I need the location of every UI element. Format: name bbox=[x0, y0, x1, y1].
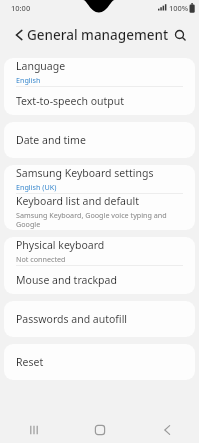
button[interactable]: Back bbox=[133, 417, 199, 443]
button[interactable]: Mouse and trackpad bbox=[4, 266, 195, 294]
button[interactable]: Physical keyboard bbox=[4, 237, 195, 265]
button[interactable]: Language bbox=[4, 58, 195, 86]
staticText: Samsung Keyboard settings bbox=[16, 166, 154, 180]
staticText: 100% bbox=[169, 3, 189, 13]
staticText: 10:00 bbox=[11, 3, 31, 13]
staticText: Not connected bbox=[16, 254, 66, 264]
button[interactable]: Search bbox=[169, 24, 191, 46]
staticText: Samsung Keyboard, Google voice typing an… bbox=[16, 210, 183, 229]
button[interactable]: Text-to-speech output bbox=[4, 87, 195, 115]
staticText: Text-to-speech output bbox=[16, 94, 125, 108]
staticText: General management bbox=[27, 26, 169, 44]
staticText: Date and time bbox=[16, 133, 86, 147]
button[interactable]: Back bbox=[8, 25, 28, 45]
button[interactable]: Home bbox=[67, 417, 133, 443]
button[interactable]: Date and time bbox=[4, 122, 195, 158]
button[interactable]: Recents bbox=[0, 417, 67, 443]
button[interactable]: Passwords and autofill bbox=[4, 301, 195, 337]
staticText: Keyboard list and default bbox=[16, 194, 139, 208]
staticText: Passwords and autofill bbox=[16, 312, 128, 326]
staticText: English (UK) bbox=[16, 182, 57, 192]
staticText: English bbox=[16, 75, 41, 85]
button[interactable]: Reset bbox=[4, 344, 195, 380]
staticText: Language bbox=[16, 59, 66, 73]
staticText: Physical keyboard bbox=[16, 238, 105, 252]
button[interactable]: Keyboard list and default bbox=[4, 194, 195, 230]
button[interactable]: Samsung Keyboard settings bbox=[4, 165, 195, 193]
staticText: Reset bbox=[16, 355, 44, 369]
staticText: Mouse and trackpad bbox=[16, 273, 117, 287]
